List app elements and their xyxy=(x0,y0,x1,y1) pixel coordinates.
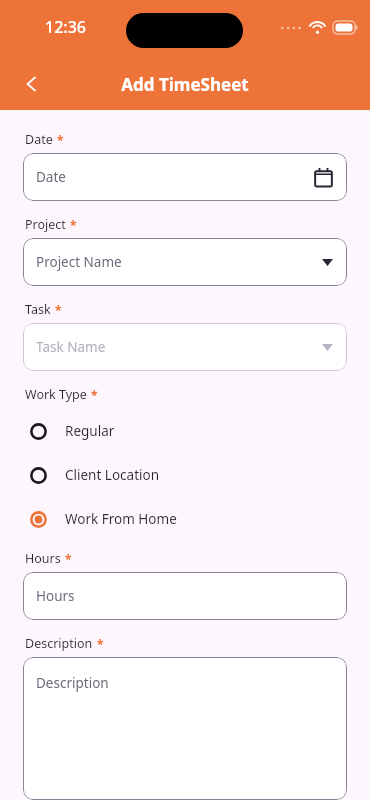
staticText: * xyxy=(55,302,62,318)
staticText: Project xyxy=(25,216,66,233)
staticText: Client Location xyxy=(65,466,160,484)
staticText: Description xyxy=(36,674,109,692)
staticText: Task xyxy=(25,301,51,318)
staticText: Description xyxy=(25,635,93,652)
staticText: * xyxy=(91,387,98,403)
staticText: Add TimeSheet xyxy=(121,73,249,96)
staticText: Hours xyxy=(36,587,75,605)
staticText: Date xyxy=(36,168,66,186)
staticText: * xyxy=(97,636,104,652)
button[interactable]: Back xyxy=(12,64,52,104)
button[interactable]: Work From Home xyxy=(0,497,370,541)
button[interactable]: Regular xyxy=(0,409,370,453)
button[interactable]: Description xyxy=(23,657,347,800)
staticText: * xyxy=(70,217,77,233)
staticText: Regular xyxy=(65,422,115,440)
button[interactable]: Hours field xyxy=(23,572,347,620)
button[interactable]: Task dropdown xyxy=(23,323,347,371)
staticText: Project Name xyxy=(36,253,122,271)
staticText: 12:36 xyxy=(45,16,86,38)
staticText: * xyxy=(57,132,64,148)
button[interactable]: Client Location xyxy=(0,453,370,497)
staticText: Task Name xyxy=(36,338,106,356)
staticText: * xyxy=(65,551,72,567)
button[interactable]: Date field xyxy=(23,153,347,201)
staticText: Date xyxy=(25,131,53,148)
staticText: Work From Home xyxy=(65,510,177,528)
staticText: Hours xyxy=(25,550,61,567)
button[interactable]: Project dropdown xyxy=(23,238,347,286)
staticText: Work Type xyxy=(25,386,87,403)
